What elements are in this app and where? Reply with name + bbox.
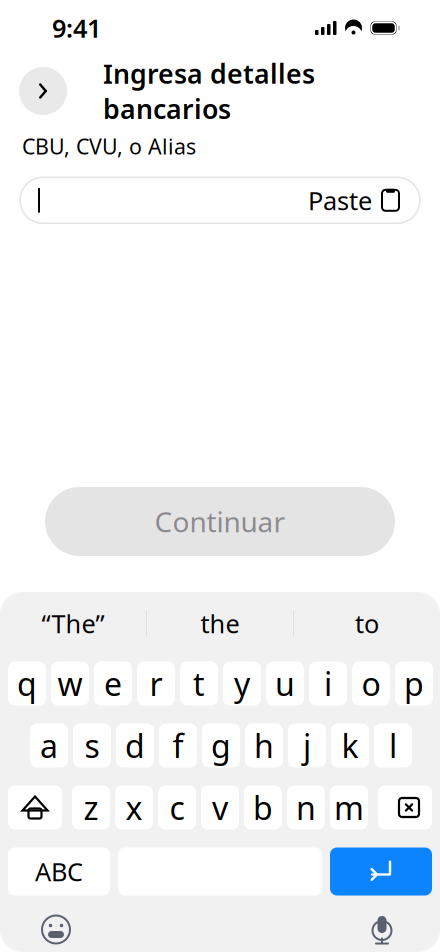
- button[interactable]: d: [116, 723, 154, 767]
- staticText: a: [40, 724, 58, 767]
- button[interactable]: t: [180, 661, 218, 705]
- button[interactable]: Backspace: [378, 785, 432, 829]
- button[interactable]: k: [331, 723, 369, 767]
- button[interactable]: “The”: [0, 592, 146, 654]
- staticText: c: [169, 786, 184, 829]
- staticText: CBU, CVU, o Alias: [22, 132, 196, 160]
- staticText: z: [83, 786, 98, 829]
- button[interactable]: Return: [330, 847, 432, 895]
- button[interactable]: Dictation: [360, 907, 404, 951]
- button[interactable]: ABC: [8, 847, 110, 895]
- staticText: d: [125, 724, 145, 767]
- button[interactable]: h: [245, 723, 283, 767]
- staticText: m: [334, 786, 364, 829]
- staticText: r: [149, 662, 162, 705]
- button[interactable]: s: [73, 723, 111, 767]
- button[interactable]: r: [137, 661, 175, 705]
- button[interactable]: q: [8, 661, 46, 705]
- staticText: k: [341, 724, 358, 767]
- button[interactable]: i: [309, 661, 347, 705]
- staticText: Continuar: [154, 503, 285, 540]
- staticText: t: [193, 662, 205, 705]
- staticText: l: [389, 724, 397, 767]
- staticText: ABC: [35, 855, 83, 888]
- staticText: Ingresa detalles bancarios: [103, 56, 315, 126]
- button[interactable]: the: [147, 592, 293, 654]
- staticText: f: [172, 724, 183, 767]
- button[interactable]: a: [30, 723, 68, 767]
- staticText: q: [17, 662, 37, 705]
- button[interactable]: y: [223, 661, 261, 705]
- staticText: the: [200, 607, 239, 640]
- staticText: g: [211, 724, 231, 767]
- button[interactable]: f: [159, 723, 197, 767]
- button[interactable]: c: [158, 785, 196, 829]
- staticText: i: [324, 662, 332, 705]
- button[interactable]: g: [202, 723, 240, 767]
- staticText: “The”: [41, 607, 104, 640]
- staticText: p: [404, 662, 424, 705]
- staticText: y: [234, 662, 250, 705]
- button[interactable]: e: [94, 661, 132, 705]
- button[interactable]: x: [115, 785, 153, 829]
- staticText: Paste: [308, 183, 372, 217]
- staticText: b: [253, 786, 273, 829]
- staticText: h: [254, 724, 274, 767]
- staticText: to: [355, 607, 379, 640]
- button[interactable]: Emoji: [34, 907, 78, 951]
- button[interactable]: to: [294, 592, 440, 654]
- button[interactable]: l: [374, 723, 412, 767]
- button[interactable]: j: [288, 723, 326, 767]
- button[interactable]: m: [330, 785, 368, 829]
- staticText: w: [57, 662, 82, 705]
- staticText: n: [296, 786, 316, 829]
- staticText: o: [361, 662, 380, 705]
- staticText: s: [84, 724, 99, 767]
- button[interactable]: b: [244, 785, 282, 829]
- button[interactable]: v: [201, 785, 239, 829]
- button[interactable]: Paste: [20, 177, 420, 223]
- button[interactable]: p: [395, 661, 433, 705]
- button[interactable]: o: [352, 661, 390, 705]
- button[interactable]: u: [266, 661, 304, 705]
- staticText: x: [125, 786, 142, 829]
- button[interactable]: z: [72, 785, 110, 829]
- staticText: j: [303, 724, 311, 767]
- button[interactable]: Shift: [8, 785, 62, 829]
- button[interactable]: w: [51, 661, 89, 705]
- button[interactable]: Continuar: [45, 487, 395, 556]
- button[interactable]: n: [287, 785, 325, 829]
- button[interactable]: Back: [19, 67, 67, 115]
- staticText: 9:41: [52, 11, 101, 45]
- staticText: v: [212, 786, 228, 829]
- staticText: e: [104, 662, 122, 705]
- staticText: u: [275, 662, 295, 705]
